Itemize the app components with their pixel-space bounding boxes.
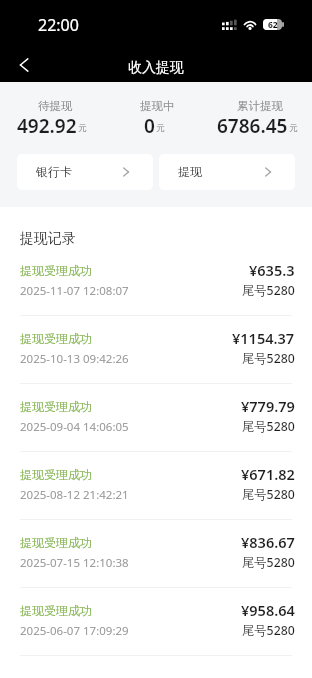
staticText: 尾号5280 xyxy=(242,350,295,367)
staticText: 22:00 xyxy=(38,14,79,36)
staticText: 2025-08-12 21:42:21 xyxy=(20,487,242,503)
staticText: 提现中 xyxy=(140,99,175,113)
button[interactable]: 提现 xyxy=(159,154,295,190)
staticText: 尾号5280 xyxy=(242,282,295,299)
button[interactable]: 提现受理成功 xyxy=(0,384,312,452)
button[interactable]: Back xyxy=(4,45,44,85)
staticText: ¥958.64 xyxy=(241,600,295,620)
staticText: 尾号5280 xyxy=(242,418,295,435)
staticText: 2025-10-13 09:42:26 xyxy=(20,351,242,367)
staticText: ¥779.79 xyxy=(241,396,295,416)
staticText: 提现受理成功 xyxy=(20,331,232,346)
staticText: 2025-06-07 17:09:29 xyxy=(20,623,242,639)
staticText: 2025-09-04 14:06:05 xyxy=(20,419,242,435)
staticText: 尾号5280 xyxy=(242,622,295,639)
staticText: 提现受理成功 xyxy=(20,603,241,618)
staticText: 尾号5280 xyxy=(242,486,295,503)
button[interactable]: 提现受理成功 xyxy=(0,452,312,520)
button[interactable]: 提现受理成功 xyxy=(0,248,312,316)
button[interactable]: 提现受理成功 xyxy=(0,588,312,656)
staticText: 0 xyxy=(144,113,155,139)
staticText: 尾号5280 xyxy=(242,554,295,571)
staticText: 提现受理成功 xyxy=(20,263,249,278)
staticText: 提现记录 xyxy=(20,230,76,248)
staticText: 提现受理成功 xyxy=(20,535,241,550)
button[interactable]: 提现受理成功 xyxy=(0,520,312,588)
staticText: 元 xyxy=(156,123,165,134)
staticText: 提现 xyxy=(178,164,202,179)
button[interactable]: 提现受理成功 xyxy=(0,316,312,384)
staticText: ¥635.3 xyxy=(249,260,295,280)
staticText: 累计提现 xyxy=(237,99,283,113)
button[interactable]: 银行卡 xyxy=(17,154,153,190)
staticText: 银行卡 xyxy=(36,164,72,179)
staticText: 元 xyxy=(289,123,298,134)
staticText: ¥1154.37 xyxy=(232,328,295,348)
staticText: ¥671.82 xyxy=(241,464,295,484)
staticText: 492.92 xyxy=(17,113,77,139)
staticText: ¥836.67 xyxy=(241,532,295,552)
staticText: 提现受理成功 xyxy=(20,399,241,414)
staticText: 2025-07-15 12:10:38 xyxy=(20,555,242,571)
staticText: 6786.45 xyxy=(217,113,288,139)
staticText: 2025-11-07 12:08:07 xyxy=(20,283,242,299)
staticText: 待提现 xyxy=(38,99,73,113)
staticText: 元 xyxy=(78,123,87,134)
staticText: 收入提现 xyxy=(128,59,184,77)
staticText: 62 xyxy=(268,19,278,30)
staticText: 提现受理成功 xyxy=(20,467,241,482)
